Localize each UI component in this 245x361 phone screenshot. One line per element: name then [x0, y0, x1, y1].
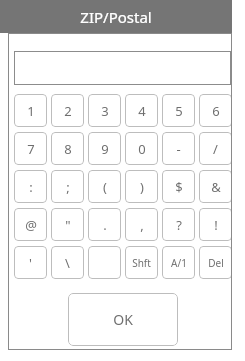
- button[interactable]: 6: [199, 94, 232, 127]
- button[interactable]: &: [199, 170, 232, 203]
- button[interactable]: 4: [125, 94, 158, 127]
- button[interactable]: 7: [14, 132, 47, 165]
- staticText: ;: [66, 178, 70, 196]
- staticText: Del: [208, 256, 224, 270]
- staticText: &: [211, 178, 221, 196]
- staticText: ?: [176, 216, 182, 234]
- button[interactable]: Shft: [125, 246, 158, 279]
- staticText: 3: [101, 102, 109, 120]
- button[interactable]: ,: [125, 208, 158, 241]
- staticText: .: [103, 216, 107, 234]
- button[interactable]: 5: [162, 94, 195, 127]
- staticText: 6: [212, 102, 220, 120]
- button[interactable]: @: [14, 208, 47, 241]
- staticText: 8: [64, 140, 72, 158]
- staticText: :: [29, 178, 33, 196]
- staticText: ": [65, 216, 71, 234]
- staticText: OK: [113, 310, 133, 329]
- button[interactable]: Del: [199, 246, 232, 279]
- button[interactable]: OK: [68, 293, 178, 346]
- button[interactable]: [14, 51, 231, 85]
- staticText: ': [29, 254, 32, 272]
- button[interactable]: ': [14, 246, 47, 279]
- button[interactable]: 8: [51, 132, 84, 165]
- staticText: 4: [138, 102, 146, 120]
- button[interactable]: 0: [125, 132, 158, 165]
- staticText: 7: [27, 140, 35, 158]
- button[interactable]: -: [162, 132, 195, 165]
- button[interactable]: (: [88, 170, 121, 203]
- button[interactable]: A/1: [162, 246, 195, 279]
- button[interactable]: :: [14, 170, 47, 203]
- button[interactable]: Space: [88, 246, 121, 279]
- staticText: 2: [64, 102, 72, 120]
- staticText: A/1: [171, 256, 187, 270]
- staticText: $: [175, 178, 183, 196]
- staticText: ): [140, 178, 144, 196]
- button[interactable]: ?: [162, 208, 195, 241]
- staticText: 5: [175, 102, 183, 120]
- button[interactable]: 1: [14, 94, 47, 127]
- staticText: 9: [101, 140, 109, 158]
- button[interactable]: 3: [88, 94, 121, 127]
- staticText: @: [25, 216, 37, 234]
- staticText: 0: [138, 140, 146, 158]
- button[interactable]: .: [88, 208, 121, 241]
- staticText: (: [103, 178, 107, 196]
- staticText: ,: [140, 216, 144, 234]
- button[interactable]: 9: [88, 132, 121, 165]
- button[interactable]: \: [51, 246, 84, 279]
- staticText: 1: [27, 102, 35, 120]
- staticText: /: [213, 140, 218, 158]
- staticText: ZIP/Postal: [80, 7, 152, 27]
- button[interactable]: !: [199, 208, 232, 241]
- button[interactable]: ;: [51, 170, 84, 203]
- staticText: -: [176, 140, 181, 158]
- button[interactable]: ": [51, 208, 84, 241]
- button[interactable]: /: [199, 132, 232, 165]
- button[interactable]: 2: [51, 94, 84, 127]
- button[interactable]: $: [162, 170, 195, 203]
- staticText: Shft: [132, 256, 151, 270]
- button[interactable]: ): [125, 170, 158, 203]
- staticText: \: [65, 254, 70, 272]
- staticText: !: [214, 216, 218, 234]
